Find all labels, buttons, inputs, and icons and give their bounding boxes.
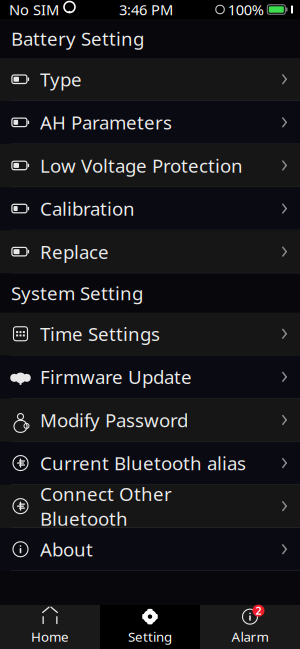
staticText: 100% bbox=[228, 0, 264, 19]
staticText: No SIM bbox=[9, 0, 59, 19]
staticText: Modify Password bbox=[40, 408, 188, 432]
staticText: Connect Other Bluetooth bbox=[40, 481, 172, 531]
staticText: Calibration bbox=[40, 196, 135, 221]
staticText: 2 bbox=[255, 604, 261, 618]
button[interactable]: Time Settings bbox=[0, 312, 300, 356]
staticText: Setting bbox=[128, 628, 172, 645]
staticText: Alarm bbox=[231, 628, 268, 645]
staticText: AH Parameters bbox=[40, 110, 172, 135]
staticText: 3:46 PM bbox=[119, 0, 173, 19]
staticText: About bbox=[40, 537, 93, 562]
staticText: Time Settings bbox=[40, 321, 160, 346]
button[interactable]: AH Parameters bbox=[0, 101, 300, 144]
button[interactable]: Modify Password bbox=[0, 399, 300, 442]
button[interactable]: About bbox=[0, 528, 300, 571]
button[interactable]: Firmware Update bbox=[0, 356, 300, 399]
button[interactable]: Connect Other Bluetooth bbox=[0, 485, 300, 528]
button[interactable]: 2 bbox=[200, 605, 300, 649]
staticText: System Setting bbox=[11, 281, 143, 305]
button[interactable]: Type bbox=[0, 58, 300, 101]
staticText: Current Bluetooth alias bbox=[40, 451, 246, 475]
button[interactable]: Calibration bbox=[0, 187, 300, 230]
staticText: Home bbox=[31, 628, 69, 645]
button[interactable]: Low Voltage Protection bbox=[0, 144, 300, 187]
staticText: Firmware Update bbox=[40, 364, 192, 389]
button[interactable]: Current Bluetooth alias bbox=[0, 442, 300, 485]
staticText: Replace bbox=[40, 239, 109, 264]
button[interactable]: Setting bbox=[100, 605, 200, 649]
button[interactable]: Replace bbox=[0, 230, 300, 273]
button[interactable]: Home bbox=[0, 605, 100, 649]
staticText: Battery Setting bbox=[11, 26, 144, 51]
staticText: Type bbox=[40, 67, 82, 92]
staticText: Low Voltage Protection bbox=[40, 153, 243, 178]
